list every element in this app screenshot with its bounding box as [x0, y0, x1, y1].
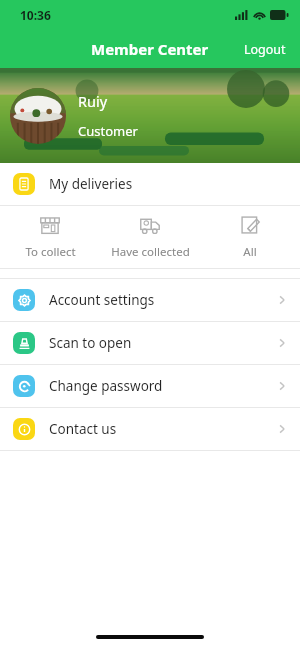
staticText: Account settings [49, 291, 276, 309]
staticText: Logout [244, 41, 286, 58]
staticText: My deliveries [49, 175, 133, 193]
button[interactable]: Contact us [0, 408, 300, 450]
staticText: Have collected [111, 244, 190, 260]
button[interactable]: Have collected [100, 206, 200, 268]
staticText: To collect [25, 244, 76, 260]
staticText: Ruiy [78, 91, 108, 111]
button[interactable]: Logout [230, 33, 300, 66]
button[interactable]: Account settings [0, 279, 300, 321]
button[interactable]: My deliveries [0, 163, 300, 205]
button[interactable]: All [200, 206, 300, 268]
staticText: All [243, 244, 257, 260]
button[interactable]: Profile photo [10, 88, 66, 144]
staticText: Customer [78, 122, 138, 140]
staticText: Change password [49, 377, 276, 395]
staticText: 10:36 [20, 7, 51, 23]
staticText: Contact us [49, 420, 276, 438]
staticText: Scan to open [49, 334, 276, 352]
button[interactable]: Change password [0, 365, 300, 407]
staticText: Member Center [91, 39, 209, 59]
button[interactable]: Scan to open [0, 322, 300, 364]
button[interactable]: To collect [0, 206, 100, 268]
